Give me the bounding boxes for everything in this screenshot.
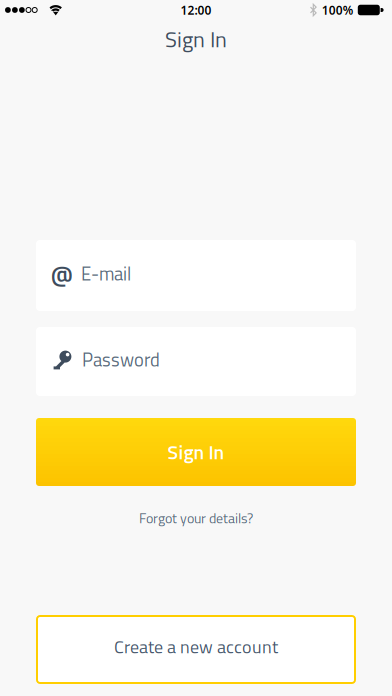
- staticText: Sign In: [165, 22, 227, 56]
- button[interactable]: Password: [36, 327, 356, 396]
- button[interactable]: @: [36, 240, 356, 311]
- button[interactable]: Sign In: [36, 418, 356, 486]
- staticText: 12:00: [180, 2, 211, 18]
- staticText: Forgot your details?: [139, 507, 253, 529]
- staticText: @: [51, 257, 72, 290]
- staticText: Password: [82, 345, 160, 374]
- staticText: 100%: [322, 2, 354, 18]
- button[interactable]: Forgot your details?: [139, 507, 253, 529]
- staticText: Sign In: [167, 437, 224, 467]
- button[interactable]: Create a new account: [36, 615, 356, 684]
- staticText: Create a new account: [114, 633, 278, 660]
- staticText: E-mail: [81, 259, 131, 288]
